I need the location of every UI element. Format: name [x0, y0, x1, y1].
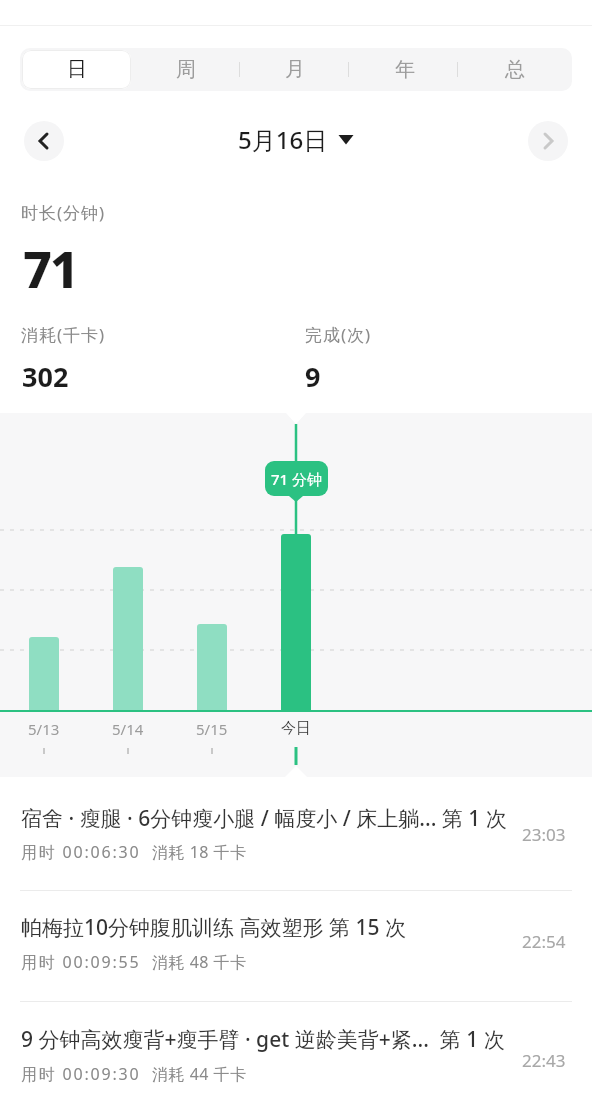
button[interactable]: 9 分钟高效瘦背+瘦手臂 · get 逆龄美背+紧... 第 1 次: [0, 1002, 592, 1094]
staticText: 消耗 44 千卡: [152, 1063, 247, 1085]
staticText: 消耗 18 千卡: [152, 841, 247, 863]
staticText: 5/13: [28, 719, 60, 739]
staticText: 消耗(千卡): [21, 323, 106, 346]
staticText: 消耗 48 千卡: [152, 951, 247, 973]
button[interactable]: 周: [131, 50, 240, 89]
staticText: 时长(分钟): [21, 201, 106, 224]
staticText: 9 分钟高效瘦背+瘦手臂 · get 逆龄美背+紧... 第 1 次: [21, 1025, 516, 1054]
button[interactable]: 日: [22, 50, 131, 89]
staticText: 22:54: [522, 930, 566, 953]
staticText: 完成(次): [305, 323, 372, 346]
staticText: 月: [285, 57, 305, 82]
staticText: 22:43: [522, 1049, 566, 1072]
button[interactable]: 宿舍 · 瘦腿 · 6分钟瘦小腿 / 幅度小 / 床上躺... 第 1 次: [0, 780, 592, 890]
staticText: 用时 00:09:30: [21, 1063, 141, 1085]
staticText: 周: [176, 57, 196, 82]
staticText: 用时 00:06:30: [21, 841, 141, 863]
button[interactable]: 总: [460, 50, 570, 89]
button[interactable]: [528, 121, 568, 161]
staticText: 总: [505, 57, 525, 82]
button[interactable]: 月: [240, 50, 350, 89]
staticText: 5/15: [196, 719, 228, 739]
button[interactable]: 帕梅拉10分钟腹肌训练 高效塑形 第 15 次: [0, 891, 592, 1001]
staticText: 日: [67, 57, 87, 82]
staticText: 今日: [281, 719, 311, 738]
staticText: 用时 00:09:55: [21, 951, 141, 973]
staticText: 帕梅拉10分钟腹肌训练 高效塑形 第 15 次: [21, 913, 516, 942]
staticText: 302: [22, 358, 69, 395]
staticText: 年: [395, 57, 415, 82]
staticText: 宿舍 · 瘦腿 · 6分钟瘦小腿 / 幅度小 / 床上躺... 第 1 次: [21, 804, 516, 833]
staticText: 9: [305, 358, 321, 395]
button[interactable]: 5月16日: [0, 119, 592, 159]
staticText: 71: [23, 235, 77, 303]
staticText: 71 分钟: [271, 469, 323, 489]
staticText: 23:03: [522, 823, 566, 846]
staticText: 5/14: [112, 719, 144, 739]
button[interactable]: 年: [350, 50, 460, 89]
staticText: 5月16日: [238, 123, 328, 156]
button[interactable]: [24, 121, 64, 161]
